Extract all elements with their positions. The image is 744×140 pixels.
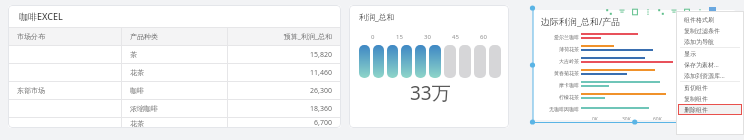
- button[interactable]: 利润_总和: [349, 5, 509, 128]
- button[interactable]: 添加为导航: [676, 36, 744, 47]
- button[interactable]: 剪切组件: [676, 82, 744, 93]
- staticText: 产品种类: [130, 32, 158, 41]
- staticText: 咖啡: [685, 81, 696, 88]
- staticText: 显示: [684, 50, 696, 58]
- button[interactable]: Toolbar action 7: [683, 8, 691, 16]
- staticText: 柠檬花茶: [559, 94, 579, 100]
- button[interactable]: 咖啡: [677, 79, 696, 89]
- button[interactable]: 复制过滤条件: [676, 25, 744, 36]
- staticText: 删除组件: [684, 106, 708, 114]
- button[interactable]: 组件格式刷: [676, 14, 744, 25]
- staticText: 保存为素材…: [684, 61, 719, 69]
- staticText: 咖啡: [130, 86, 144, 95]
- staticText: 茶: [685, 61, 691, 68]
- staticText: 摩卡咖啡: [559, 82, 579, 88]
- button[interactable]: Toolbar action 5: [657, 8, 665, 16]
- staticText: 花茶: [130, 119, 144, 128]
- staticText: 33万: [410, 80, 451, 106]
- staticText: 组件格式刷: [684, 16, 714, 24]
- staticText: 边际利润_总和/产品: [541, 15, 621, 27]
- staticText: 花茶: [685, 71, 696, 78]
- staticText: 45: [452, 33, 459, 41]
- staticText: 15: [396, 33, 403, 41]
- staticText: 薄荷花茶: [559, 46, 579, 52]
- button[interactable]: 复制组件: [676, 93, 744, 104]
- staticText: 浓缩咖啡: [685, 91, 707, 98]
- button[interactable]: Toolbar action 1: [605, 8, 613, 16]
- button[interactable]: Toolbar action 2: [618, 8, 626, 16]
- staticText: 添加到资源库…: [684, 72, 725, 80]
- button[interactable]: 边际利润_总和/产品: [533, 10, 736, 120]
- button[interactable]: 茶: [677, 59, 691, 69]
- staticText: 咖啡EXCEL: [19, 10, 63, 22]
- staticText: 花茶: [130, 68, 144, 77]
- staticText: 添加为导航: [684, 38, 714, 46]
- staticText: 黄春菊花茶: [554, 70, 579, 76]
- staticText: 东部市场: [17, 86, 45, 95]
- button[interactable]: 花茶: [677, 69, 696, 79]
- staticText: 30: [424, 33, 431, 41]
- staticText: 18,360: [310, 104, 332, 114]
- staticText: 剪切组件: [684, 84, 708, 92]
- staticText: 0K: [592, 116, 598, 120]
- button[interactable]: Toolbar action 4: [644, 8, 652, 16]
- button[interactable]: 浓缩咖啡: [677, 89, 707, 99]
- staticText: 6,700: [314, 118, 332, 128]
- button[interactable]: 删除组件: [678, 104, 742, 115]
- staticText: 爱尔兰咖啡: [554, 34, 579, 40]
- staticText: 60K: [653, 116, 662, 120]
- button[interactable]: Toolbar action 3: [631, 8, 639, 16]
- staticText: 60: [480, 33, 487, 41]
- staticText: 11,460: [310, 68, 332, 78]
- button[interactable]: 添加到资源库…: [676, 70, 744, 81]
- staticText: 预算_利润_总和: [283, 32, 332, 42]
- staticText: 26,300: [310, 86, 332, 96]
- staticText: 市场分布: [17, 32, 45, 41]
- staticText: 复制过滤条件: [684, 27, 720, 35]
- staticText: 0: [371, 33, 375, 41]
- staticText: 产品种类: [677, 49, 699, 56]
- button[interactable]: 咖啡EXCEL: [8, 5, 341, 128]
- staticText: 大吉岭茶: [559, 58, 579, 64]
- staticText: 无咖啡因咖啡: [549, 106, 579, 112]
- button[interactable]: 保存为素材…: [676, 59, 744, 70]
- button[interactable]: More options: [709, 7, 716, 16]
- staticText: 15,820: [310, 50, 332, 60]
- staticText: 30K: [622, 116, 631, 120]
- button[interactable]: Toolbar action 8: [696, 8, 704, 16]
- staticText: 浓缩咖啡: [130, 104, 158, 113]
- staticText: 利润_总和: [359, 11, 395, 22]
- staticText: 复制组件: [684, 95, 708, 103]
- button[interactable]: Toolbar action 6: [670, 8, 678, 16]
- staticText: 茶: [130, 50, 137, 59]
- button[interactable]: 显示: [676, 48, 744, 59]
